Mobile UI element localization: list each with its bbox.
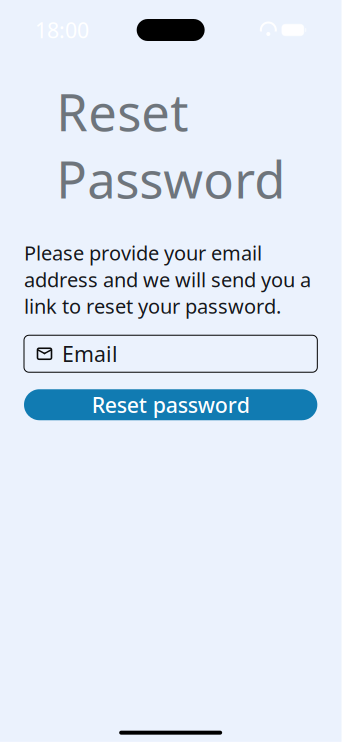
button[interactable]: Reset password — [24, 389, 317, 420]
staticText: Reset Password — [56, 78, 285, 213]
staticText: Email — [62, 340, 118, 368]
staticText: Please provide your email address and we… — [24, 240, 311, 319]
button[interactable]: Email — [24, 335, 317, 372]
staticText: Reset password — [92, 391, 250, 419]
staticText: 18:00 — [35, 16, 89, 44]
